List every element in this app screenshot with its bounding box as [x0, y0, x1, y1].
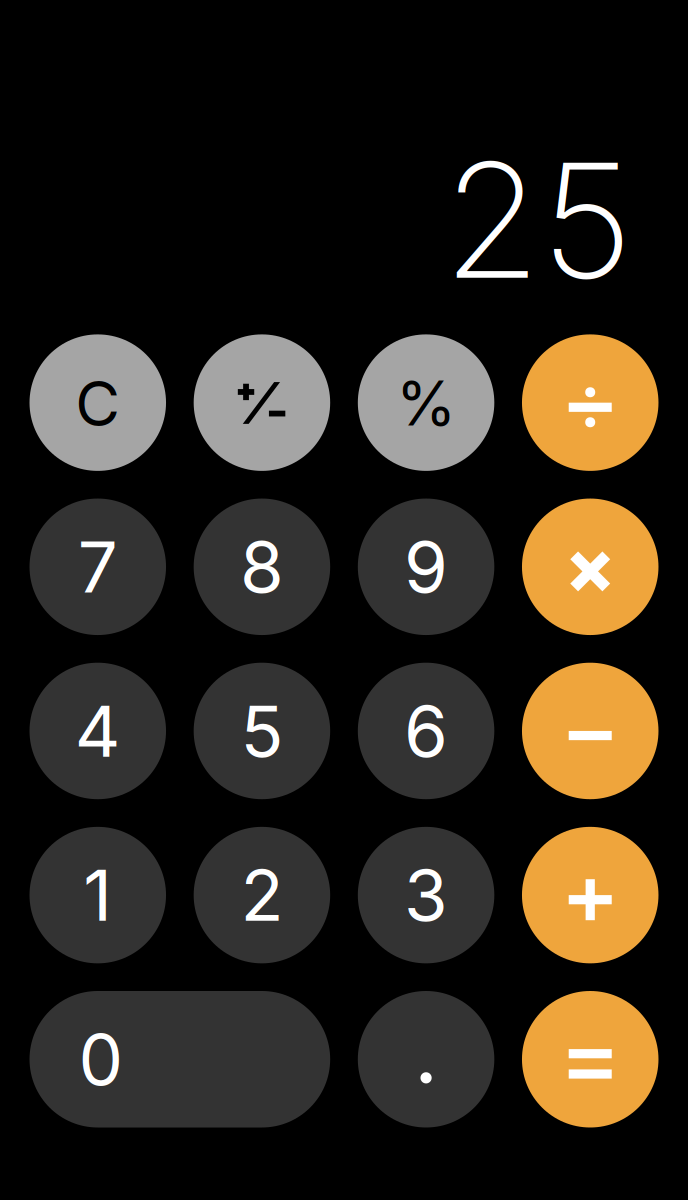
- staticText: 0: [78, 1016, 123, 1102]
- button[interactable]: C: [29, 334, 166, 471]
- button[interactable]: %: [358, 334, 494, 471]
- staticText: 4: [75, 688, 121, 774]
- staticText: 5: [240, 688, 283, 774]
- button[interactable]: Divide: [522, 334, 658, 471]
- button[interactable]: 4: [29, 663, 166, 799]
- staticText: 2: [240, 852, 283, 938]
- staticText: 3: [404, 852, 448, 938]
- button[interactable]: 7: [29, 498, 166, 635]
- staticText: 7: [78, 524, 118, 609]
- button[interactable]: Add: [522, 827, 658, 963]
- button[interactable]: Equals: [522, 991, 658, 1127]
- button[interactable]: 8: [194, 498, 330, 635]
- button[interactable]: 1: [29, 827, 166, 963]
- button[interactable]: 2: [194, 827, 330, 963]
- staticText: C: [75, 366, 120, 441]
- staticText: 8: [240, 524, 284, 609]
- button[interactable]: Subtract: [522, 663, 658, 799]
- staticText: %: [396, 366, 456, 440]
- staticText: 25: [443, 124, 633, 316]
- button[interactable]: Multiply: [522, 498, 658, 635]
- button[interactable]: Plus minus: [194, 334, 330, 471]
- staticText: 6: [404, 688, 448, 774]
- staticText: 1: [83, 852, 112, 938]
- button[interactable]: 5: [194, 663, 330, 799]
- button[interactable]: 6: [358, 663, 494, 799]
- button[interactable]: Decimal point: [358, 991, 494, 1127]
- button[interactable]: 3: [358, 827, 494, 963]
- button[interactable]: Zero: [29, 991, 330, 1127]
- staticText: 9: [404, 524, 448, 609]
- button[interactable]: 9: [358, 498, 494, 635]
